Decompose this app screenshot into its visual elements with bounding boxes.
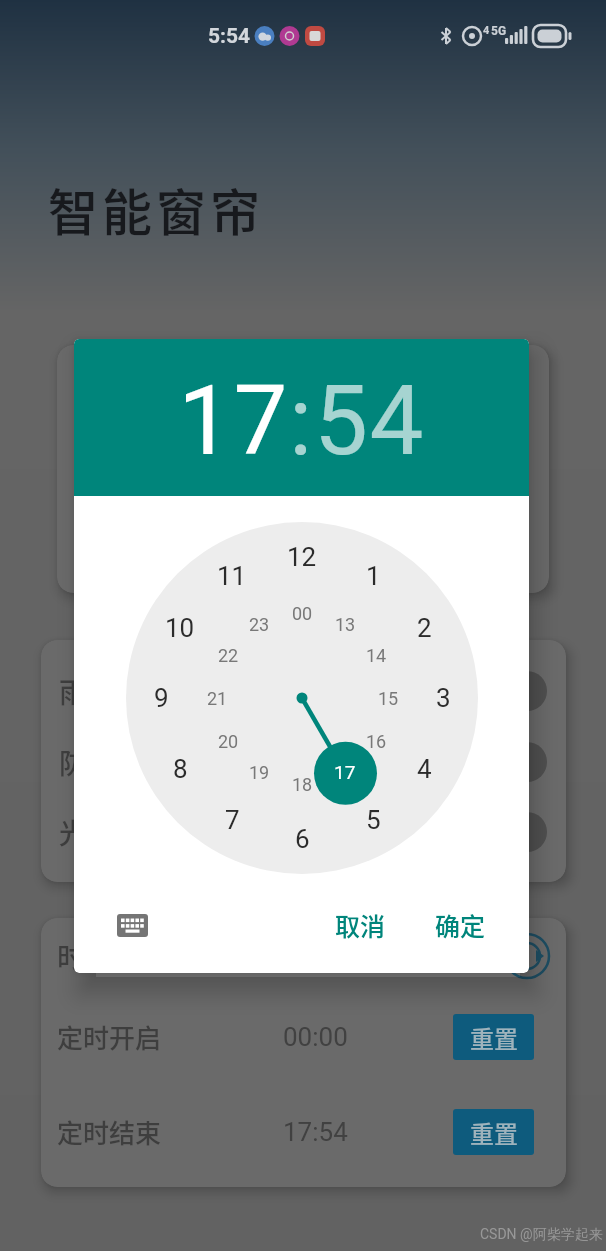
- staticText: 17: [334, 761, 356, 783]
- staticText: 2: [417, 613, 432, 643]
- staticText: 15: [378, 688, 399, 709]
- staticText: 5: [366, 805, 381, 835]
- staticText: 7: [225, 805, 240, 835]
- staticText: 17:54: [283, 1117, 348, 1147]
- staticText: 18: [292, 774, 313, 795]
- staticText: 23: [249, 614, 270, 635]
- button[interactable]: 取消: [315, 903, 405, 947]
- button[interactable]: [507, 742, 547, 782]
- staticText: 21: [207, 688, 228, 709]
- button[interactable]: [503, 932, 551, 980]
- staticText: 16: [366, 731, 387, 752]
- staticText: 10: [165, 613, 195, 643]
- button[interactable]: [507, 812, 547, 852]
- staticText: :: [289, 365, 314, 478]
- staticText: 重置: [470, 1115, 518, 1150]
- staticText: 1: [366, 561, 381, 591]
- staticText: 定时开启: [57, 1018, 162, 1056]
- button[interactable]: 防尘: [59, 740, 139, 784]
- button[interactable]: 确定: [415, 903, 505, 947]
- button[interactable]: 雨天: [59, 669, 139, 713]
- staticText: 时间: [57, 936, 114, 977]
- staticText: 00: [292, 603, 313, 624]
- button[interactable]: 17: [178, 365, 289, 478]
- staticText: 12: [287, 542, 317, 572]
- button[interactable]: 重置: [453, 1109, 534, 1155]
- staticText: CSDN @阿柴学起来: [480, 1226, 603, 1244]
- staticText: 00:00: [283, 1022, 348, 1052]
- button[interactable]: [117, 914, 148, 937]
- staticText: 9: [154, 683, 169, 713]
- staticText: 4: [483, 24, 490, 37]
- button[interactable]: 重置: [453, 1014, 534, 1060]
- staticText: 6: [295, 824, 310, 854]
- staticText: 雨天: [59, 671, 116, 712]
- staticText: 13: [335, 614, 356, 635]
- staticText: 重置: [470, 1020, 518, 1055]
- staticText: 20: [218, 731, 239, 752]
- staticText: 取消: [335, 907, 386, 943]
- staticText: 11: [217, 561, 247, 591]
- staticText: 光感: [59, 812, 116, 853]
- staticText: 智能窗帘: [48, 173, 264, 245]
- staticText: 14: [366, 645, 387, 666]
- staticText: 22: [218, 645, 239, 666]
- button[interactable]: 光感: [59, 810, 139, 854]
- button[interactable]: [507, 671, 547, 711]
- staticText: 定时结束: [57, 1113, 162, 1151]
- button[interactable]: 54: [314, 365, 425, 478]
- staticText: 确定: [435, 907, 486, 943]
- staticText: 3: [436, 683, 451, 713]
- staticText: 5:54: [208, 24, 251, 49]
- staticText: 防尘: [59, 742, 116, 783]
- staticText: 5G: [491, 24, 507, 38]
- staticText: 4: [417, 754, 432, 784]
- staticText: 19: [249, 762, 270, 783]
- staticText: 8: [173, 754, 188, 784]
